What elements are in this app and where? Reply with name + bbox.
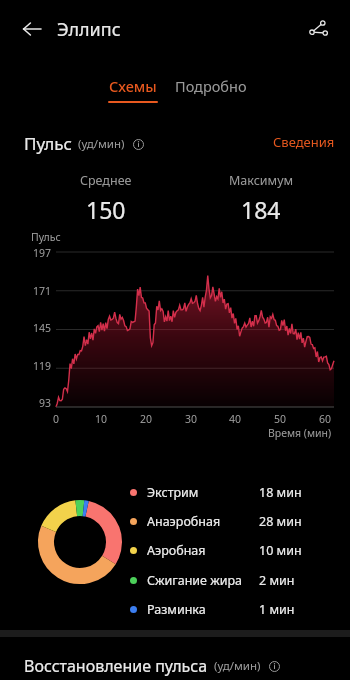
button[interactable]: Подробно <box>171 74 251 98</box>
button[interactable]: Экстрим <box>130 481 330 503</box>
staticText: 20 <box>140 412 153 426</box>
staticText: 30 <box>185 412 198 426</box>
button[interactable]: Анаэробная <box>130 510 330 532</box>
button[interactable]: Сведения <box>270 131 338 153</box>
button[interactable]: Разминка <box>130 598 330 620</box>
staticText: Сведения <box>273 133 335 151</box>
staticText: 10 <box>95 412 108 426</box>
staticText: (уд/мин) <box>214 658 261 674</box>
staticText: Разминка <box>147 601 206 618</box>
button[interactable]: Схемы <box>104 74 162 105</box>
button[interactable]: Аэробная <box>130 539 330 561</box>
staticText: 0 <box>53 412 60 426</box>
staticText: 10 мин <box>259 542 302 559</box>
staticText: 184 <box>241 194 281 225</box>
staticText: Пульс <box>31 230 61 244</box>
staticText: Аэробная <box>147 542 206 559</box>
button[interactable]: Сжигание жира <box>130 569 330 591</box>
staticText: 197 <box>33 246 52 260</box>
button[interactable]: Информация <box>266 658 282 674</box>
staticText: 150 <box>86 194 126 225</box>
staticText: Время (мин) <box>268 426 332 440</box>
staticText: (уд/мин) <box>78 136 125 152</box>
staticText: 40 <box>229 412 242 426</box>
staticText: Восстановление пульса <box>24 655 208 677</box>
staticText: Сжигание жира <box>147 572 243 589</box>
staticText: Пульс <box>24 132 72 155</box>
staticText: Среднее <box>80 172 132 189</box>
button[interactable]: Поделиться <box>302 13 334 45</box>
staticText: Максимум <box>229 172 294 189</box>
button[interactable]: Назад <box>16 13 48 45</box>
staticText: 18 мин <box>259 484 302 501</box>
staticText: Подробно <box>175 76 247 96</box>
staticText: 145 <box>33 321 52 335</box>
button[interactable]: Информация <box>130 136 146 152</box>
staticText: 60 <box>319 412 332 426</box>
staticText: Эллипс <box>57 17 121 42</box>
staticText: 28 мин <box>259 513 302 530</box>
staticText: 50 <box>274 412 287 426</box>
staticText: 119 <box>33 359 52 373</box>
staticText: Экстрим <box>147 484 199 501</box>
staticText: 1 мин <box>259 601 295 618</box>
staticText: 93 <box>39 396 52 410</box>
staticText: 2 мин <box>259 572 295 589</box>
staticText: 171 <box>33 284 52 298</box>
staticText: Анаэробная <box>147 513 221 530</box>
staticText: Схемы <box>109 76 157 96</box>
